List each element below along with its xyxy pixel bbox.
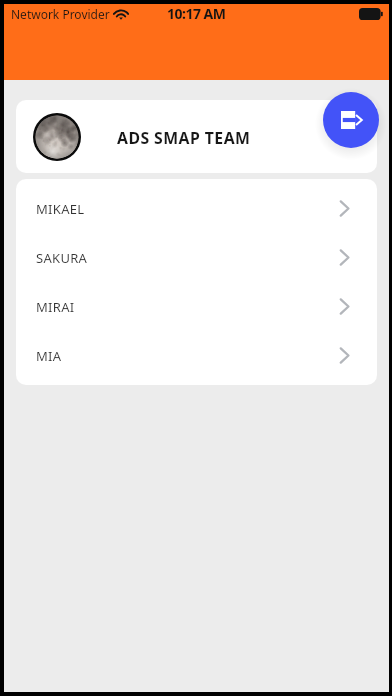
staticText: MIA bbox=[36, 347, 62, 365]
staticText: 10:17 AM bbox=[167, 4, 226, 23]
button[interactable]: Log out bbox=[323, 92, 379, 148]
staticText: MIKAEL bbox=[36, 200, 85, 218]
button[interactable]: MIA bbox=[16, 331, 377, 380]
staticText: SAKURA bbox=[36, 249, 88, 267]
button[interactable]: MIKAEL bbox=[16, 184, 377, 233]
button[interactable]: MIRAI bbox=[16, 282, 377, 331]
button[interactable]: SAKURA bbox=[16, 233, 377, 282]
staticText: MIRAI bbox=[36, 298, 75, 316]
staticText: Network Provider bbox=[11, 6, 110, 22]
staticText: ADS SMAP TEAM bbox=[117, 127, 251, 149]
